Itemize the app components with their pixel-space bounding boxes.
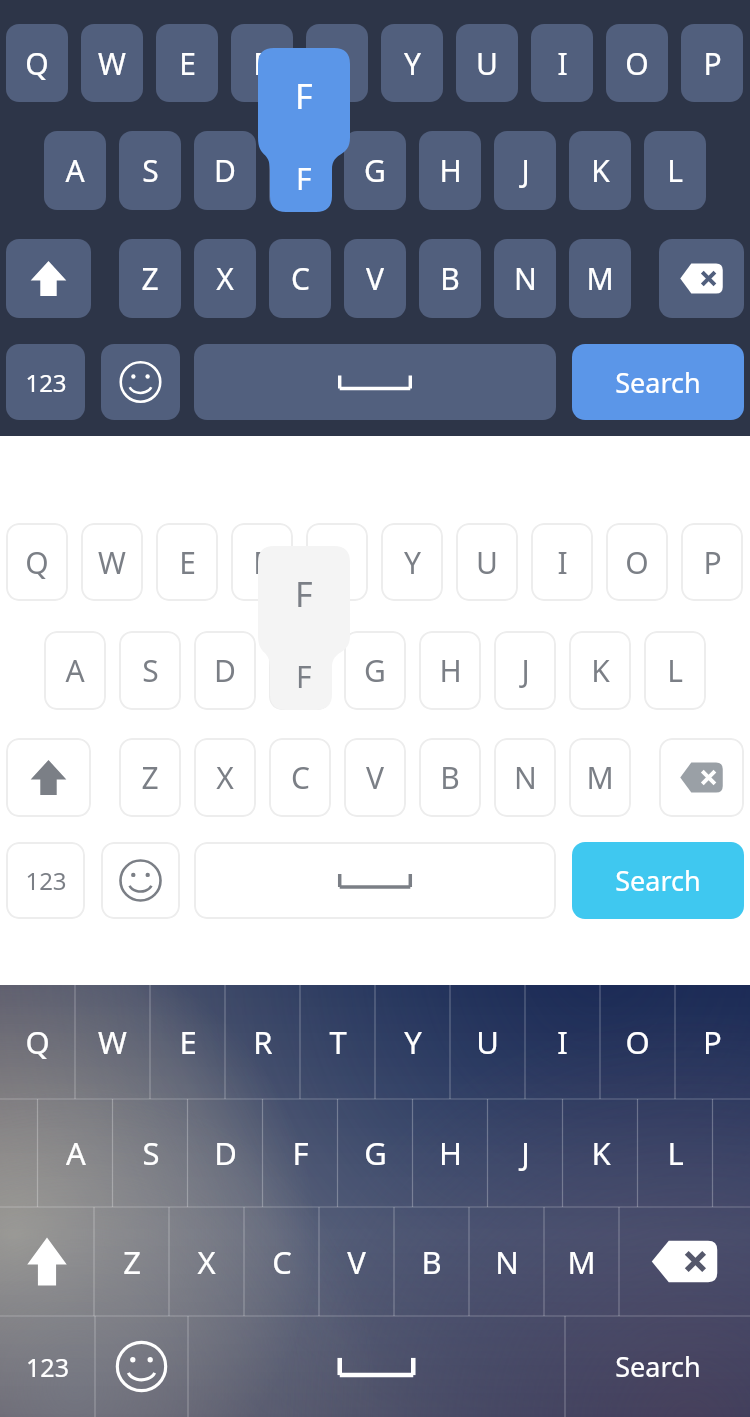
button[interactable]: M <box>569 239 631 318</box>
button[interactable]: B <box>419 239 481 318</box>
button[interactable]: Emoji <box>101 842 180 919</box>
button[interactable]: U <box>456 523 518 601</box>
button[interactable]: Emoji <box>101 344 180 420</box>
button[interactable]: N <box>469 1207 544 1316</box>
button[interactable]: Search <box>572 344 744 420</box>
button[interactable]: N <box>494 239 556 318</box>
button[interactable]: T <box>306 523 368 601</box>
button[interactable]: Space <box>194 344 556 420</box>
button[interactable]: 123 <box>6 344 85 420</box>
button[interactable]: M <box>569 738 631 817</box>
button[interactable]: Y <box>381 523 443 601</box>
button[interactable]: S <box>113 1099 188 1207</box>
staticText: 123 <box>26 1350 69 1384</box>
button[interactable]: J <box>494 131 556 210</box>
button[interactable]: V <box>319 1207 394 1316</box>
staticText: R <box>253 43 272 84</box>
button[interactable]: Backspace <box>659 738 744 817</box>
button[interactable]: Z <box>94 1207 169 1316</box>
button[interactable]: E <box>150 985 225 1099</box>
button[interactable]: Space <box>188 1316 565 1417</box>
button[interactable]: Y <box>381 24 443 102</box>
button[interactable]: T <box>300 985 375 1099</box>
button[interactable]: Backspace <box>619 1207 750 1316</box>
button[interactable]: S <box>119 131 181 210</box>
button[interactable]: I <box>525 985 600 1099</box>
button[interactable]: F <box>263 1099 338 1207</box>
button[interactable]: Shift <box>6 239 91 318</box>
button[interactable]: Backspace <box>659 239 744 318</box>
button[interactable]: F key preview <box>258 546 350 710</box>
button[interactable]: K <box>563 1099 638 1207</box>
button[interactable]: R <box>231 24 293 102</box>
button[interactable]: Q <box>6 24 68 102</box>
button[interactable]: J <box>488 1099 563 1207</box>
button[interactable]: N <box>494 738 556 817</box>
button[interactable]: Z <box>119 239 181 318</box>
button[interactable]: F key preview <box>258 48 350 212</box>
button[interactable]: H <box>413 1099 488 1207</box>
button[interactable]: O <box>606 24 668 102</box>
button[interactable]: L <box>644 631 706 710</box>
button[interactable]: X <box>194 738 256 817</box>
button[interactable]: V <box>344 239 406 318</box>
button[interactable]: O <box>600 985 675 1099</box>
button[interactable]: K <box>569 131 631 210</box>
button[interactable]: D <box>194 131 256 210</box>
button[interactable]: Q <box>6 523 68 601</box>
button[interactable]: W <box>75 985 150 1099</box>
button[interactable]: J <box>494 631 556 710</box>
button[interactable]: E <box>156 523 218 601</box>
button[interactable]: Search <box>565 1316 750 1417</box>
button[interactable]: O <box>606 523 668 601</box>
button[interactable]: X <box>194 239 256 318</box>
button[interactable]: W <box>81 24 143 102</box>
button[interactable]: I <box>531 523 593 601</box>
button[interactable]: W <box>81 523 143 601</box>
button[interactable]: L <box>638 1099 713 1207</box>
button[interactable]: Y <box>375 985 450 1099</box>
button[interactable]: U <box>456 24 518 102</box>
button[interactable]: M <box>544 1207 619 1316</box>
button[interactable]: P <box>675 985 750 1099</box>
button[interactable]: X <box>169 1207 244 1316</box>
button[interactable]: K <box>569 631 631 710</box>
button[interactable]: U <box>450 985 525 1099</box>
button[interactable]: 123 <box>6 842 85 919</box>
button[interactable]: P <box>681 24 743 102</box>
button[interactable]: E <box>156 24 218 102</box>
button[interactable]: Shift <box>6 738 91 817</box>
button[interactable]: A <box>44 631 106 710</box>
button[interactable]: D <box>194 631 256 710</box>
button[interactable]: H <box>419 131 481 210</box>
button[interactable]: C <box>244 1207 319 1316</box>
button[interactable]: I <box>531 24 593 102</box>
button[interactable]: 123 <box>0 1316 95 1417</box>
button[interactable]: Space <box>194 842 556 919</box>
button[interactable]: Z <box>119 738 181 817</box>
button[interactable]: A <box>44 131 106 210</box>
button[interactable]: C <box>269 239 331 318</box>
button[interactable]: D <box>188 1099 263 1207</box>
button[interactable]: H <box>419 631 481 710</box>
button[interactable]: T <box>306 24 368 102</box>
button[interactable]: R <box>231 523 293 601</box>
button[interactable]: L <box>644 131 706 210</box>
button[interactable]: Search <box>572 842 744 919</box>
button[interactable]: Shift <box>0 1207 94 1316</box>
button[interactable]: B <box>419 738 481 817</box>
button[interactable]: F <box>269 131 331 210</box>
button[interactable]: G <box>338 1099 413 1207</box>
button[interactable]: S <box>119 631 181 710</box>
button[interactable]: Q <box>0 985 75 1099</box>
button[interactable]: A <box>38 1099 113 1207</box>
button[interactable]: R <box>225 985 300 1099</box>
button[interactable]: V <box>344 738 406 817</box>
button[interactable]: G <box>344 631 406 710</box>
button[interactable]: G <box>344 131 406 210</box>
button[interactable]: Emoji <box>95 1316 188 1417</box>
button[interactable]: C <box>269 738 331 817</box>
button[interactable]: P <box>681 523 743 601</box>
button[interactable]: B <box>394 1207 469 1316</box>
button[interactable]: F <box>269 631 331 710</box>
